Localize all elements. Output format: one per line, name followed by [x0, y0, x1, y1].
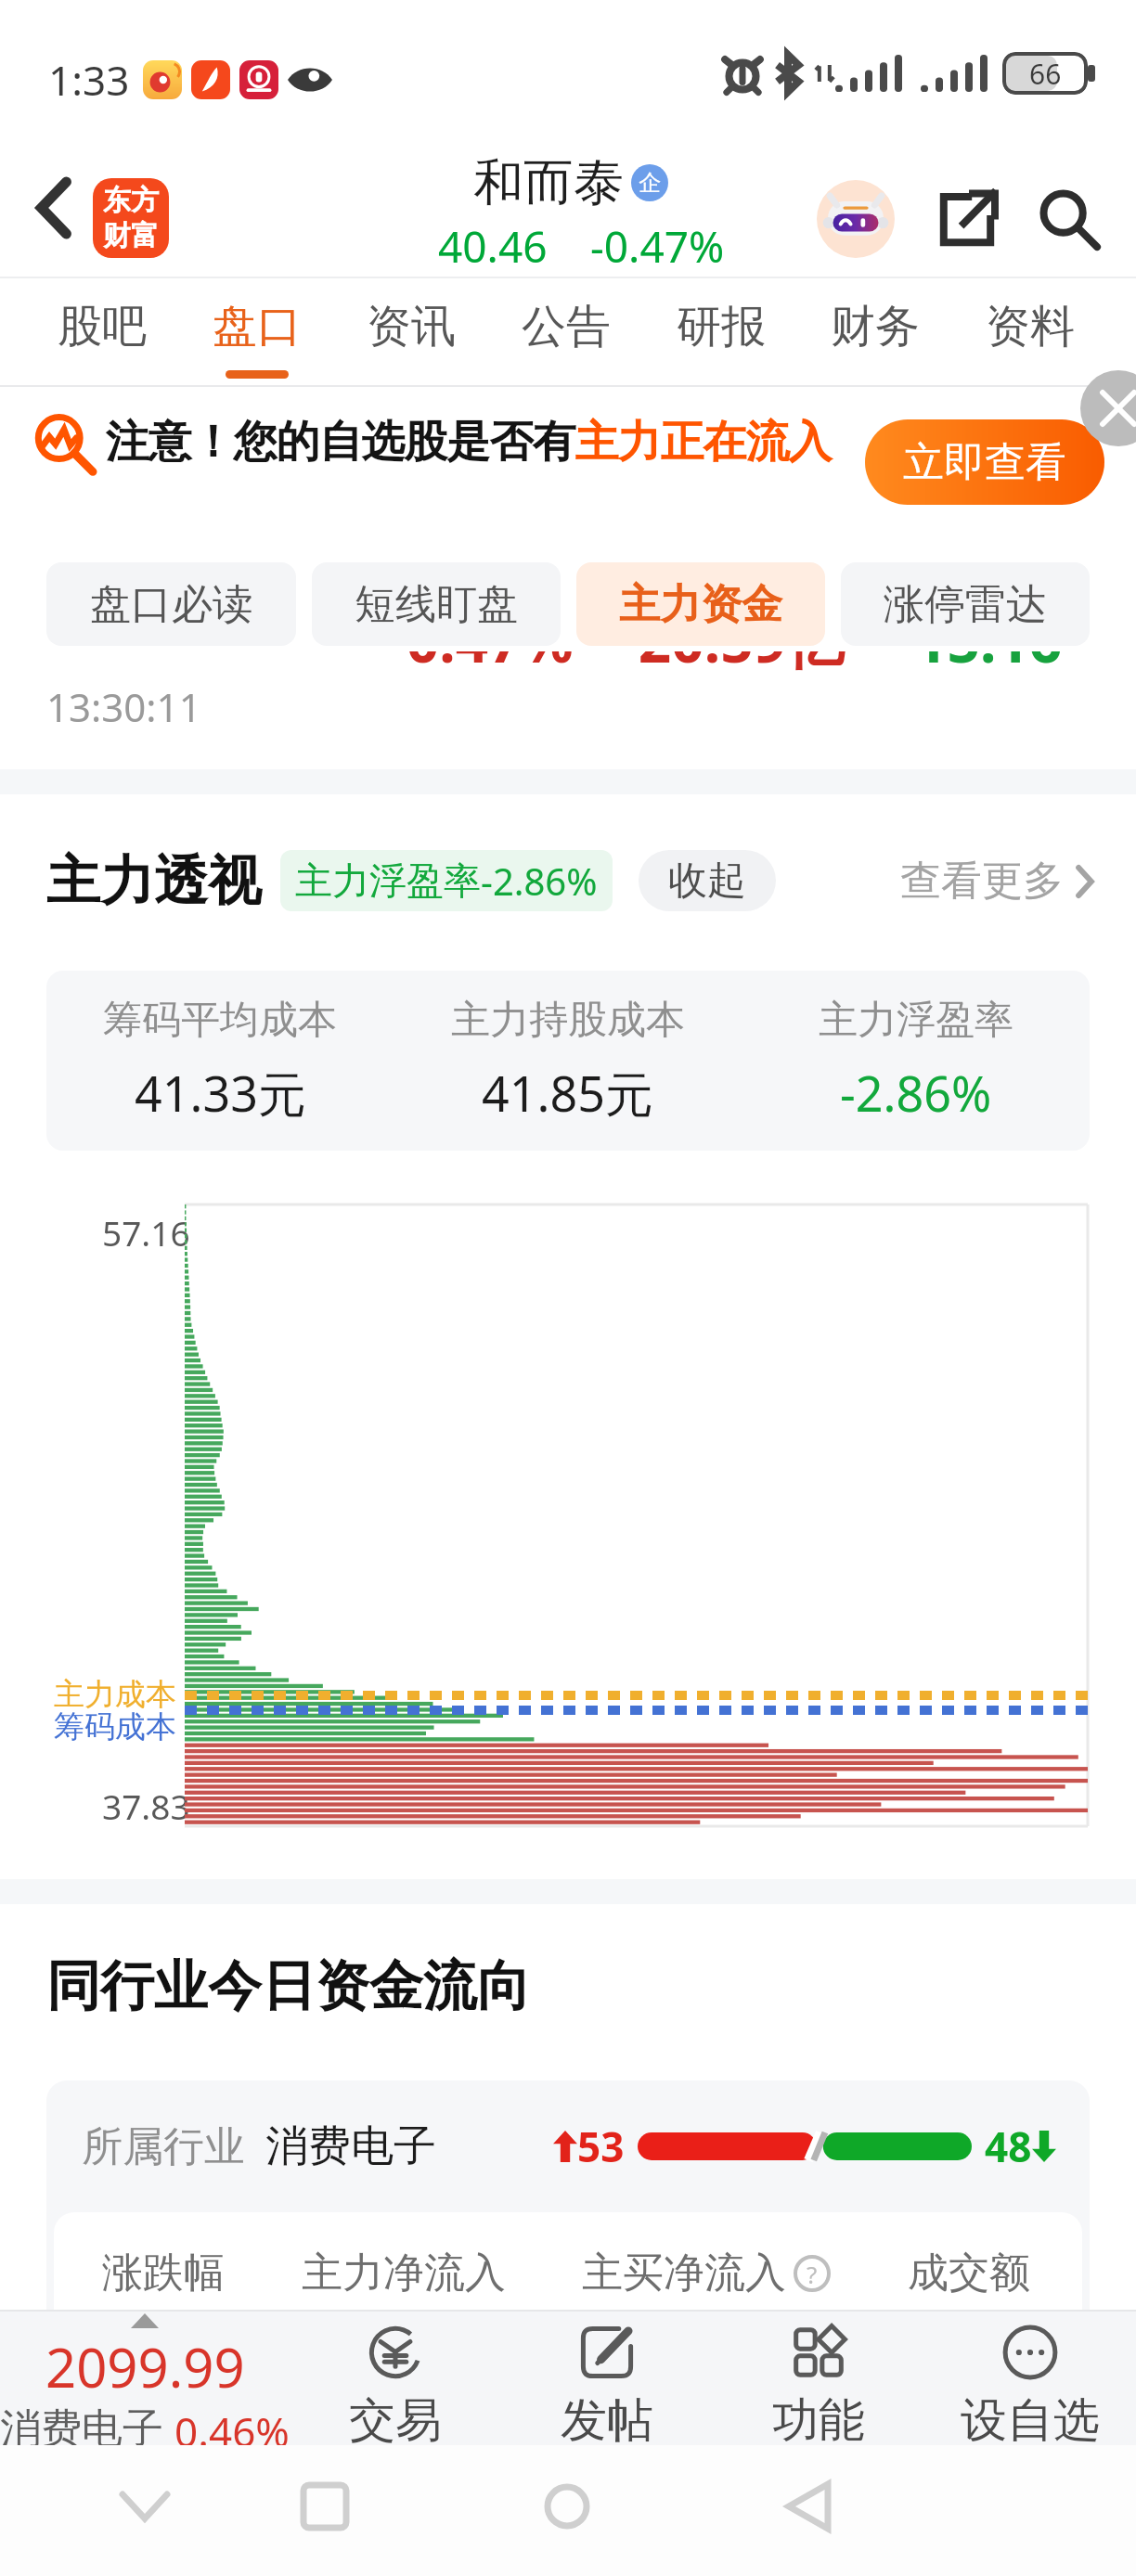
button[interactable]: 立即查看 — [865, 419, 1104, 505]
button[interactable]: Recents — [290, 2471, 360, 2542]
staticText: 和而泰 — [473, 151, 624, 214]
staticText: 主力浮盈率 — [819, 996, 1013, 1045]
staticText: 主力正在流入 — [575, 415, 832, 470]
staticText: 成交额 — [908, 2248, 1030, 2299]
staticText: 设自选 — [961, 2391, 1100, 2445]
staticText: ? — [807, 2258, 818, 2290]
staticText: 主力持股成本 — [451, 996, 685, 1045]
button[interactable]: 2099.99 — [0, 2310, 290, 2445]
staticText: 筹码平均成本 — [103, 996, 337, 1045]
staticText: 注意！ — [106, 415, 234, 470]
button[interactable]: 股吧 — [48, 278, 156, 379]
staticText: 41.85元 — [482, 1060, 653, 1126]
staticText: 15.16 — [914, 601, 1063, 679]
staticText: 筹码成本 — [54, 1707, 176, 1746]
button[interactable]: 查看更多 — [900, 856, 1093, 907]
staticText: 48 — [985, 2119, 1032, 2174]
staticText: 立即查看 — [903, 437, 1066, 488]
button[interactable]: Back — [773, 2471, 844, 2542]
staticText: 1:33 — [48, 52, 130, 108]
staticText: 查看更多 — [900, 856, 1064, 907]
button[interactable]: 发帖 — [501, 2310, 713, 2445]
staticText: 66 — [1029, 55, 1062, 93]
button[interactable]: 收起 — [639, 850, 776, 911]
staticText: -2.86% — [481, 856, 598, 906]
staticText: 功能 — [772, 2391, 865, 2445]
staticText: 主力透视 — [46, 847, 262, 915]
staticText: 主买净流入 — [582, 2248, 786, 2299]
staticText: 财富 — [103, 218, 159, 253]
staticText: 消费电子 — [0, 2403, 163, 2445]
staticText: 收起 — [668, 857, 746, 906]
staticText: 53 — [577, 2119, 625, 2174]
button[interactable]: Home — [532, 2471, 602, 2542]
button[interactable]: 资料 — [976, 278, 1084, 379]
staticText: 盘口必读 — [90, 579, 253, 630]
staticText: 主力浮盈率 — [295, 857, 481, 904]
staticText: 同行业今日资金流向 — [46, 1952, 531, 2020]
staticText: 主力净流入 — [302, 2248, 506, 2299]
button[interactable]: AI Assistant — [817, 180, 895, 258]
staticText: 2099.99 — [45, 2330, 245, 2403]
staticText: 东方 — [103, 183, 159, 218]
staticText: 13:30:11 — [46, 680, 201, 733]
staticText: 企 — [639, 169, 661, 197]
staticText: 0.46% — [174, 2403, 290, 2445]
staticText: 37.83 — [102, 1783, 190, 1829]
button[interactable]: 主力资金 — [576, 562, 825, 646]
button[interactable]: East Money — [93, 178, 169, 258]
staticText: 所属行业 — [82, 2121, 245, 2172]
staticText: 交易 — [349, 2391, 442, 2445]
staticText: 41.33元 — [135, 1060, 306, 1126]
staticText: 研报 — [677, 299, 766, 354]
staticText: 财务 — [831, 299, 920, 354]
staticText: 消费电子 — [265, 2119, 436, 2173]
staticText: -20.59亿 — [620, 601, 845, 680]
staticText: 发帖 — [561, 2391, 653, 2445]
staticText: -0.47% — [388, 601, 574, 679]
button[interactable]: 盘口 — [203, 278, 311, 379]
staticText: 公告 — [522, 299, 611, 354]
staticText: 主力成本 — [54, 1675, 176, 1714]
staticText: -2.86% — [840, 1060, 992, 1126]
button[interactable]: Close banner — [1080, 370, 1136, 446]
staticText: 盘口 — [213, 299, 302, 354]
button[interactable]: Share — [928, 180, 1006, 258]
staticText: 股吧 — [58, 299, 147, 354]
button[interactable]: 资讯 — [357, 278, 465, 379]
button[interactable]: 短线盯盘 — [312, 562, 561, 646]
button[interactable]: Search — [1030, 180, 1108, 258]
button[interactable]: 研报 — [667, 278, 775, 379]
button[interactable]: 财务 — [821, 278, 929, 379]
button[interactable]: 功能 — [713, 2310, 924, 2445]
button[interactable]: 公告 — [512, 278, 620, 379]
button[interactable]: 盘口必读 — [46, 562, 296, 646]
button[interactable]: 涨停雷达 — [841, 562, 1090, 646]
button[interactable]: 设自选 — [924, 2310, 1136, 2445]
button[interactable]: Back — [17, 139, 91, 277]
staticText: 主力资金 — [619, 579, 782, 630]
staticText: 资料 — [986, 299, 1075, 354]
staticText: 您的自选股是否有 — [234, 415, 575, 470]
staticText: -0.47% — [590, 217, 725, 276]
staticText: 40.46 — [438, 217, 548, 276]
staticText: 短线盯盘 — [355, 579, 518, 630]
staticText: 57.16 — [102, 1209, 190, 1256]
staticText: 涨跌幅 — [102, 2248, 225, 2299]
staticText: 资讯 — [367, 299, 456, 354]
button[interactable]: Hide keyboard — [110, 2471, 180, 2542]
staticText: 涨停雷达 — [884, 579, 1047, 630]
button[interactable]: 交易 — [290, 2310, 501, 2445]
